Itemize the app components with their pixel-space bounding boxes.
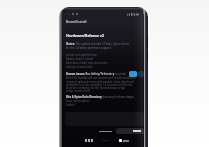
- button[interactable]: Input field: [65, 112, 144, 126]
- staticText: Wired lift Standby will not resume seen …: [66, 76, 136, 92]
- button[interactable]: Beam/Install: [62, 18, 144, 26]
- staticText: Beam/Install: [66, 20, 87, 24]
- button[interactable]: Recents: [85, 139, 93, 142]
- button[interactable]: Status chip: [129, 71, 137, 77]
- staticText: Bits & Bytes/Info Directory discovery in…: [66, 95, 134, 99]
- staticText: Known issues: Bus Safety/Telemetry is pa…: [66, 72, 126, 76]
- button[interactable]: Back: [119, 139, 129, 142]
- button[interactable]: Cancel: [97, 128, 114, 134]
- button[interactable]: Install: [116, 128, 144, 134]
- staticText: Hardware/Release v2: [66, 33, 104, 38]
- staticText: Sensor core patched new Battery drain 2 …: [66, 53, 108, 69]
- staticText: Notes: This update includes 12 fixes, de…: [66, 42, 130, 50]
- staticText: fixup, see snapshot Submit: [66, 99, 90, 107]
